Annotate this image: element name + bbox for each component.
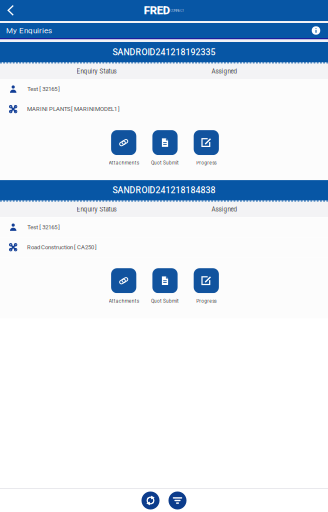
button[interactable]: Progress bbox=[186, 268, 227, 304]
staticText: Enquiry Status bbox=[76, 206, 116, 213]
button[interactable]: Information bbox=[308, 23, 328, 38]
staticText: Attachments bbox=[109, 298, 139, 304]
staticText: Quot Submit bbox=[151, 160, 179, 166]
staticText: Road Construction [ CA250 ] bbox=[27, 244, 97, 251]
staticText: Test [ 32165 ] bbox=[27, 86, 60, 93]
staticText: Progress bbox=[196, 298, 216, 304]
button[interactable]: Attachments bbox=[103, 130, 144, 166]
staticText: Test [ 32165 ] bbox=[27, 224, 60, 231]
button[interactable]: Attachments bbox=[103, 268, 144, 304]
staticText: CONNECT bbox=[170, 8, 184, 13]
button[interactable]: Filter bbox=[168, 491, 186, 509]
staticText: My Enquiries bbox=[6, 26, 52, 35]
button[interactable]: Quot Submit bbox=[144, 268, 186, 304]
staticText: SANDROID241218192335 bbox=[112, 47, 215, 57]
staticText: Assigned bbox=[211, 68, 237, 75]
staticText: Assigned bbox=[211, 206, 237, 213]
button[interactable]: Back bbox=[0, 0, 22, 21]
staticText: Attachments bbox=[109, 160, 139, 166]
button[interactable]: Quot Submit bbox=[144, 130, 186, 166]
staticText: Enquiry Status bbox=[76, 68, 116, 75]
staticText: FRED bbox=[144, 4, 170, 17]
staticText: Progress bbox=[196, 160, 216, 166]
button[interactable]: Refresh bbox=[141, 491, 159, 509]
staticText: Quot Submit bbox=[151, 298, 179, 304]
staticText: SANDROID241218184838 bbox=[112, 185, 215, 195]
staticText: MARINI PLANTS [ MARINIMODEL1 ] bbox=[27, 106, 120, 113]
button[interactable]: Progress bbox=[186, 130, 227, 166]
